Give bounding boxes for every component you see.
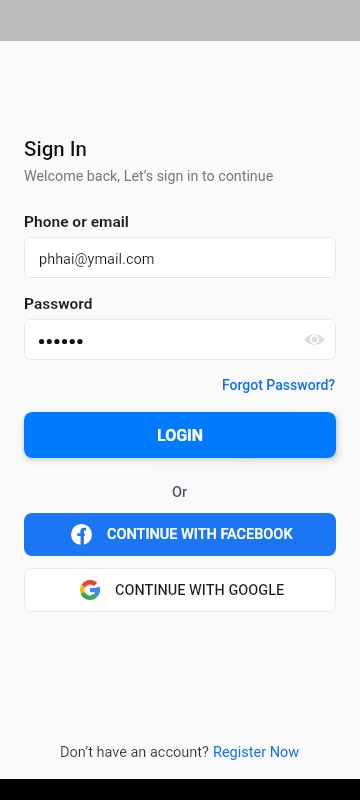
staticText: Forgot Password? [222, 377, 336, 393]
button[interactable]: phhai@ymail.com [24, 237, 336, 278]
button[interactable]: Forgot Password? [222, 377, 336, 393]
button[interactable]: LOGIN [24, 412, 336, 458]
button[interactable]: CONTINUE WITH FACEBOOK [24, 513, 336, 556]
staticText: Or [172, 484, 188, 501]
button[interactable]: Show password [24, 319, 336, 360]
staticText: phhai@ymail.com [39, 251, 155, 268]
staticText: Welcome back, Let’s sign in to continue [24, 168, 274, 185]
staticText: CONTINUE WITH GOOGLE [115, 582, 285, 599]
staticText: CONTINUE WITH FACEBOOK [107, 526, 293, 543]
staticText: Register Now [213, 744, 300, 761]
button[interactable]: Register Now [213, 744, 300, 761]
staticText: Password [24, 295, 93, 313]
staticText: Sign In [24, 137, 87, 161]
staticText: LOGIN [157, 426, 204, 445]
staticText: Phone or email [24, 213, 129, 231]
button[interactable]: CONTINUE WITH GOOGLE [24, 568, 336, 612]
staticText: Don’t have an account? [60, 744, 213, 761]
button[interactable]: Show password [304, 329, 325, 350]
